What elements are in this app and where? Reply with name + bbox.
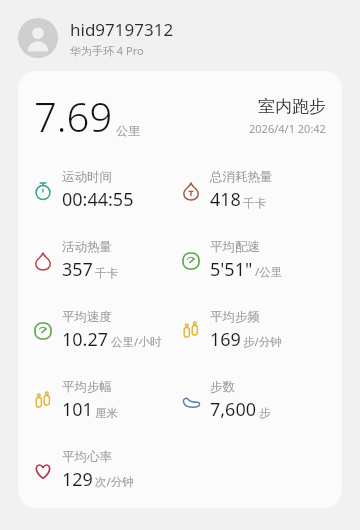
- button[interactable]: Duration: [32, 169, 180, 212]
- button[interactable]: hid97197312: [18, 18, 342, 58]
- staticText: 平均心率: [62, 449, 112, 465]
- staticText: 厘米: [95, 406, 118, 420]
- staticText: 平均步频: [210, 309, 260, 325]
- staticText: 平均步幅: [62, 379, 112, 395]
- staticText: 平均配速: [210, 239, 260, 255]
- other: Cadence: [181, 321, 201, 341]
- staticText: 418: [210, 187, 241, 212]
- staticText: 357: [62, 257, 93, 282]
- button[interactable]: Pace: [32, 309, 180, 352]
- other: Pace: [33, 321, 53, 341]
- other: Active calories: [33, 251, 53, 271]
- staticText: 7.69: [34, 89, 113, 143]
- other: Total calories: [181, 181, 201, 201]
- staticText: 101: [62, 397, 93, 422]
- staticText: 华为手环 4 Pro: [70, 43, 144, 58]
- other: Pace: [181, 251, 201, 271]
- staticText: 公里: [116, 123, 140, 138]
- button[interactable]: Heart rate: [32, 449, 180, 492]
- staticText: /公里: [255, 264, 283, 280]
- staticText: 步/分钟: [243, 334, 282, 350]
- staticText: 总消耗热量: [210, 169, 273, 185]
- button[interactable]: Pace: [180, 239, 328, 282]
- staticText: 次/分钟: [95, 474, 134, 490]
- staticText: 2026/4/1 20:42: [249, 121, 326, 136]
- staticText: 7,600: [210, 397, 257, 422]
- button[interactable]: Active calories: [32, 239, 180, 282]
- staticText: 平均速度: [62, 309, 112, 325]
- staticText: hid97197312: [70, 18, 174, 41]
- button[interactable]: Cadence: [32, 379, 180, 422]
- staticText: 129: [62, 467, 93, 492]
- other: Steps: [181, 391, 201, 411]
- staticText: 活动热量: [62, 239, 112, 255]
- staticText: 千卡: [243, 196, 266, 210]
- other: Duration: [33, 181, 53, 201]
- button[interactable]: Cadence: [180, 309, 328, 352]
- staticText: 运动时间: [62, 169, 112, 185]
- other: Cadence: [33, 391, 53, 411]
- staticText: 步: [259, 406, 271, 420]
- button[interactable]: Total calories: [180, 169, 328, 212]
- other: Heart rate: [33, 461, 53, 481]
- staticText: 00:44:55: [62, 187, 134, 212]
- staticText: 5'51": [210, 257, 253, 282]
- staticText: 169: [210, 327, 241, 352]
- staticText: 千卡: [95, 266, 118, 280]
- button[interactable]: Steps: [180, 379, 328, 422]
- staticText: 步数: [210, 379, 235, 395]
- staticText: 公里/小时: [111, 334, 162, 350]
- staticText: 室内跑步: [258, 96, 326, 117]
- staticText: 10.27: [62, 327, 109, 352]
